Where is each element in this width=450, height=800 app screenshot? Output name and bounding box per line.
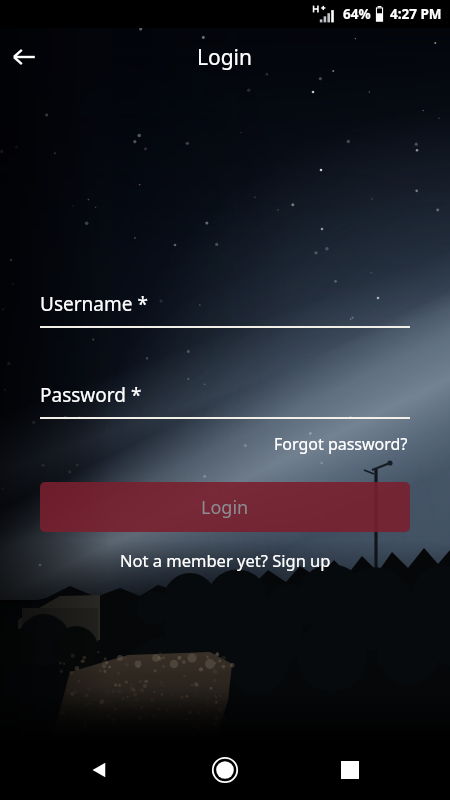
staticText: Login: [201, 495, 249, 520]
button[interactable]: Recent apps: [326, 746, 374, 794]
button[interactable]: Password *: [40, 373, 410, 417]
button[interactable]: Not a member yet? Sign up: [116, 546, 335, 574]
staticText: 4:27 PM: [390, 5, 442, 23]
button[interactable]: Login: [40, 482, 410, 532]
button[interactable]: Forgot password?: [272, 429, 410, 459]
staticText: Username *: [40, 291, 148, 317]
staticText: Forgot password?: [274, 433, 408, 455]
button[interactable]: Home: [201, 746, 249, 794]
button[interactable]: Back: [4, 37, 44, 77]
staticText: 64%: [343, 5, 371, 23]
staticText: Password *: [40, 382, 142, 408]
staticText: Login: [197, 43, 253, 72]
staticText: Not a member yet? Sign up: [120, 549, 331, 571]
button[interactable]: Back: [76, 746, 124, 794]
button[interactable]: Username *: [40, 282, 410, 326]
